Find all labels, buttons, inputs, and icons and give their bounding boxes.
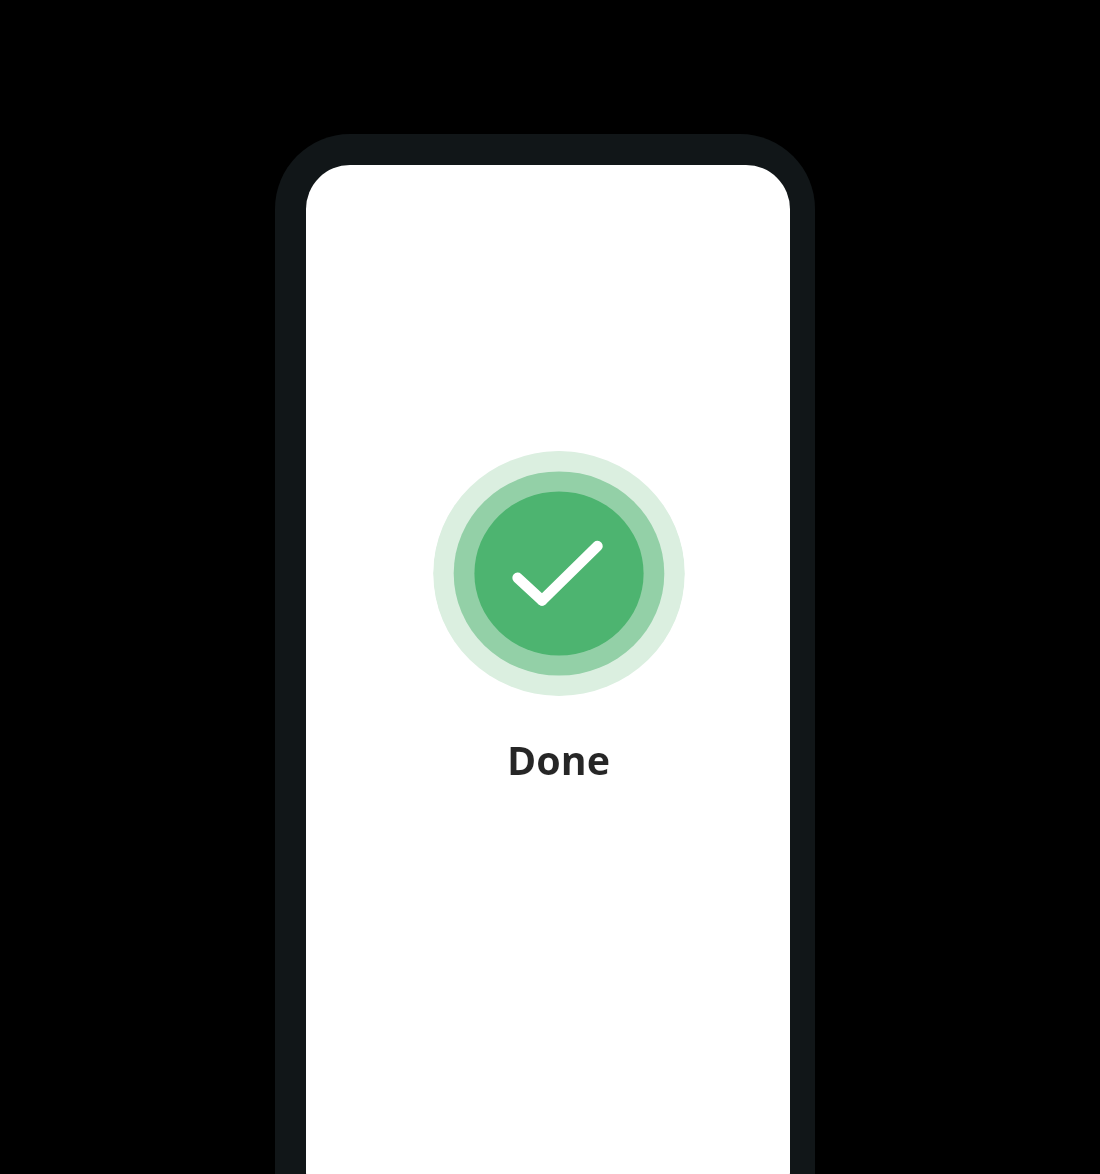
staticText: Done	[507, 733, 610, 787]
button[interactable]: Success, task completed	[433, 451, 685, 696]
button[interactable]: Done	[438, 733, 678, 793]
